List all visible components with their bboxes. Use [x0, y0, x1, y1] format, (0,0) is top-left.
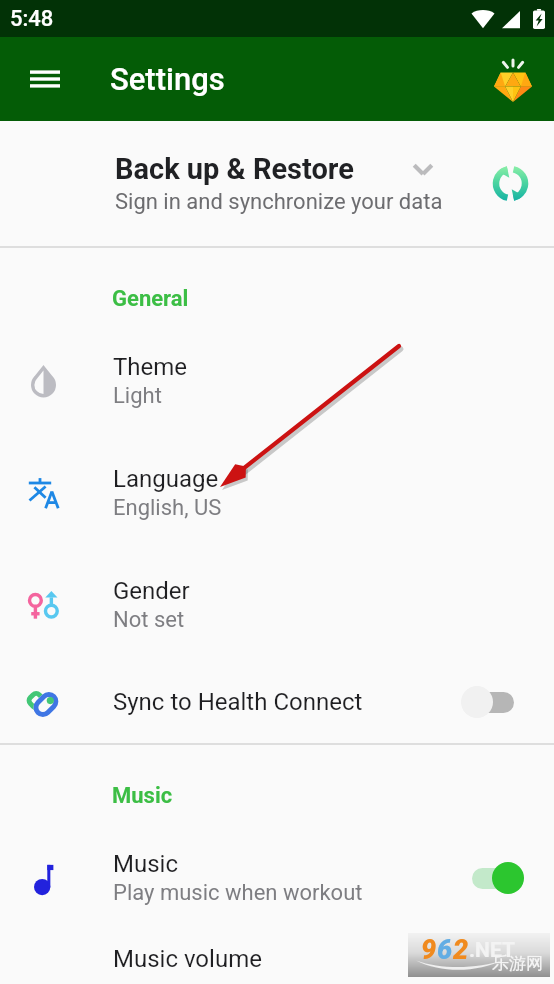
button[interactable]: Switch on	[461, 856, 524, 900]
staticText: General	[112, 286, 189, 312]
button[interactable]: Music	[0, 822, 554, 934]
staticText: Sync to Health Connect	[113, 688, 363, 716]
staticText: Music volume	[113, 945, 262, 973]
staticText: 2	[453, 934, 469, 966]
staticText: Back up & Restore	[115, 152, 354, 186]
staticText: Theme	[113, 353, 188, 381]
staticText: Language	[113, 465, 219, 493]
button[interactable]: Switch off	[461, 680, 524, 724]
staticText: Sign in and synchronize your data	[115, 189, 443, 215]
staticText: English, US	[113, 495, 222, 521]
staticText: 5:48	[10, 6, 54, 32]
button[interactable]: Sync to Health Connect	[0, 661, 554, 743]
button[interactable]: Theme	[0, 325, 554, 437]
staticText: 6	[437, 934, 453, 966]
staticText: .NET	[469, 938, 515, 963]
button[interactable]: Gender	[0, 549, 554, 661]
button[interactable]: Music volume	[0, 934, 554, 984]
staticText: Music	[112, 783, 173, 809]
staticText: 乐游网	[492, 953, 543, 974]
button[interactable]: Premium	[482, 48, 544, 110]
staticText: Gender	[113, 577, 190, 605]
button[interactable]: Language	[0, 437, 554, 549]
staticText: Music	[113, 850, 178, 878]
staticText: Play music when workout	[113, 880, 363, 906]
button[interactable]: Back up & Restore	[0, 121, 554, 246]
staticText: 9	[421, 934, 437, 966]
staticText: Light	[113, 383, 162, 409]
button[interactable]: Open navigation menu	[16, 50, 74, 108]
staticText: Settings	[110, 61, 225, 97]
staticText: Not set	[113, 607, 185, 633]
